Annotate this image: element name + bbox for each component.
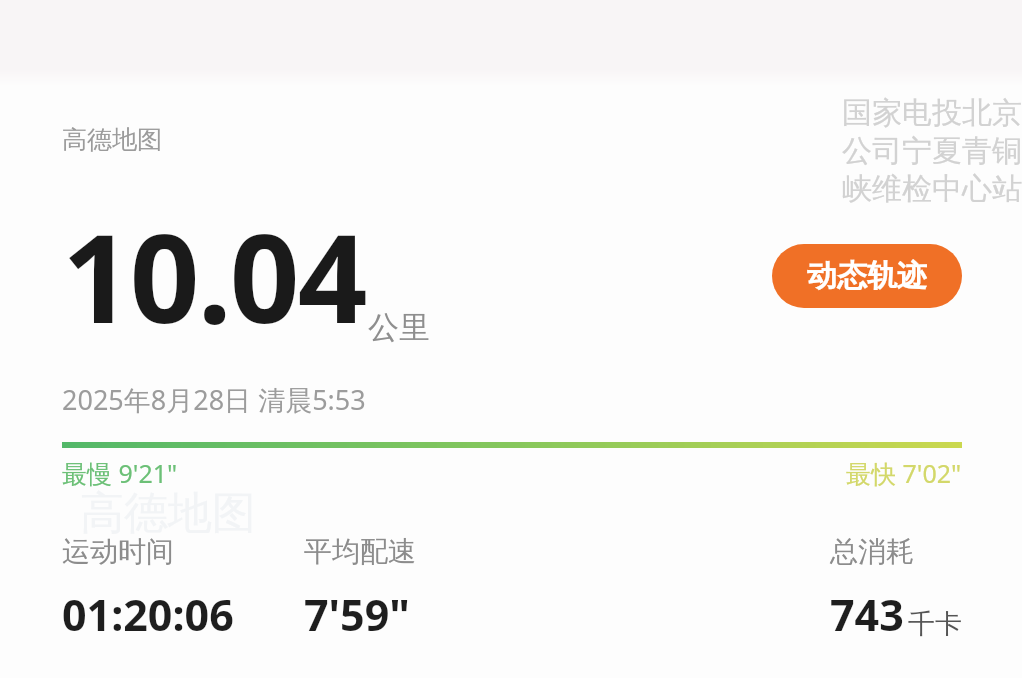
staticText: 公司宁夏青铜 xyxy=(842,132,1022,170)
staticText: 动态轨迹 xyxy=(807,257,927,295)
staticText: 最快 7'02" xyxy=(846,456,962,490)
staticText: 高德地图 xyxy=(62,124,162,155)
staticText: 运动时间 xyxy=(62,534,174,569)
staticText: 总消耗 xyxy=(830,534,914,569)
staticText: 01:20:06 xyxy=(62,585,234,644)
staticText: 平均配速 xyxy=(304,534,416,569)
staticText: 2025年8月28日 清晨5:53 xyxy=(62,381,366,418)
staticText: 743 xyxy=(830,585,904,644)
button[interactable]: 动态轨迹 xyxy=(772,244,962,308)
staticText: 峡维检中心站 xyxy=(842,170,1022,208)
staticText: 高德地图 xyxy=(80,486,256,541)
staticText: 公里 xyxy=(368,308,430,347)
staticText: 国家电投北京 xyxy=(842,94,1022,132)
staticText: 千卡 xyxy=(908,607,962,641)
staticText: 7'59" xyxy=(304,585,410,644)
staticText: 10.04 xyxy=(62,193,366,359)
staticText: 最慢 9'21" xyxy=(62,456,178,490)
